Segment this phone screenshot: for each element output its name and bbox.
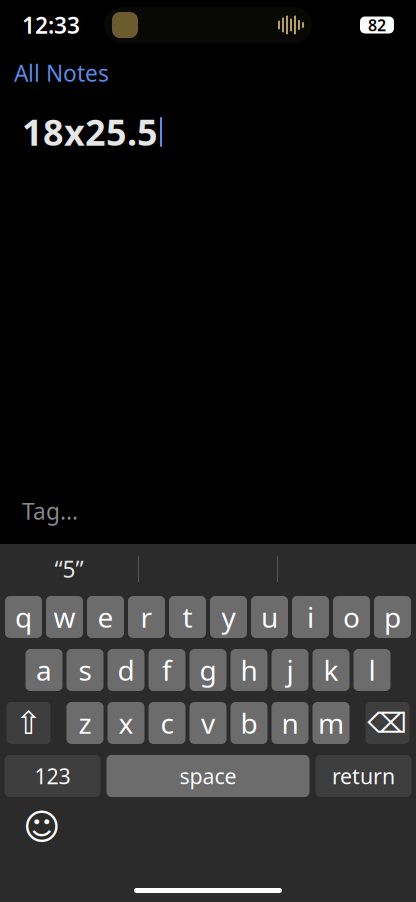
button[interactable]: z — [66, 702, 103, 744]
button[interactable]: c — [148, 702, 185, 744]
button[interactable]: Delete — [365, 702, 409, 744]
staticText: return — [332, 762, 395, 790]
button[interactable]: return — [315, 755, 411, 797]
staticText: i — [307, 598, 314, 636]
button[interactable]: v — [189, 702, 226, 744]
button[interactable]: n — [271, 702, 308, 744]
staticText: e — [97, 598, 113, 636]
staticText: u — [261, 598, 278, 636]
button[interactable]: y — [210, 596, 247, 638]
button[interactable]: h — [230, 649, 267, 691]
button[interactable]: j — [271, 649, 308, 691]
staticText: f — [162, 651, 172, 689]
staticText: k — [323, 651, 338, 689]
staticText: v — [201, 704, 215, 742]
staticText: q — [15, 598, 32, 636]
button[interactable]: b — [230, 702, 267, 744]
button[interactable]: k — [312, 649, 349, 691]
button[interactable]: m — [312, 702, 349, 744]
staticText: ⇧ — [15, 705, 42, 741]
button[interactable]: a — [25, 649, 62, 691]
staticText: o — [343, 598, 360, 636]
button[interactable]: l — [353, 649, 390, 691]
staticText: 123 — [34, 762, 70, 790]
staticText: Tag... — [22, 496, 78, 526]
button[interactable]: 123 — [4, 755, 100, 797]
button[interactable]: space — [106, 755, 309, 797]
button[interactable]: x — [107, 702, 144, 744]
button[interactable]: q — [5, 596, 42, 638]
button[interactable]: w — [46, 596, 83, 638]
staticText: c — [160, 704, 173, 742]
staticText: a — [36, 651, 52, 689]
staticText: b — [240, 704, 257, 742]
staticText: 82 — [368, 14, 386, 36]
staticText: ⌫ — [367, 707, 407, 739]
staticText: n — [281, 704, 298, 742]
button[interactable]: r — [128, 596, 165, 638]
button[interactable]: 􀆉 — [0, 52, 109, 94]
staticText: j — [286, 651, 293, 689]
staticText: w — [53, 598, 75, 636]
button[interactable]: t — [169, 596, 206, 638]
staticText: t — [182, 598, 192, 636]
staticText: p — [384, 598, 401, 636]
staticText: l — [368, 651, 375, 689]
staticText: “5” — [54, 554, 83, 584]
staticText: g — [199, 651, 216, 689]
staticText: ☺ — [23, 807, 61, 847]
button[interactable]: f — [148, 649, 185, 691]
staticText: 12:33 — [22, 10, 80, 40]
staticText: y — [221, 598, 235, 636]
staticText: r — [140, 598, 152, 636]
button[interactable]: i — [292, 596, 329, 638]
button[interactable]: u — [251, 596, 288, 638]
button[interactable]: o — [333, 596, 370, 638]
button[interactable]: s — [66, 649, 103, 691]
staticText: All Notes — [14, 58, 109, 88]
staticText: 18x25.5 — [22, 108, 158, 156]
button[interactable]: d — [107, 649, 144, 691]
button[interactable]: Emoji — [20, 807, 64, 847]
staticText: space — [179, 762, 236, 790]
staticText: m — [318, 704, 344, 742]
button[interactable]: p — [374, 596, 411, 638]
staticText: d — [117, 651, 134, 689]
button[interactable]: g — [189, 649, 226, 691]
button[interactable]: Shift — [6, 702, 50, 744]
button[interactable]: e — [87, 596, 124, 638]
staticText: s — [78, 651, 91, 689]
button[interactable]: “5” — [0, 547, 138, 591]
staticText: z — [78, 704, 91, 742]
staticText: x — [118, 704, 133, 742]
staticText: h — [240, 651, 257, 689]
